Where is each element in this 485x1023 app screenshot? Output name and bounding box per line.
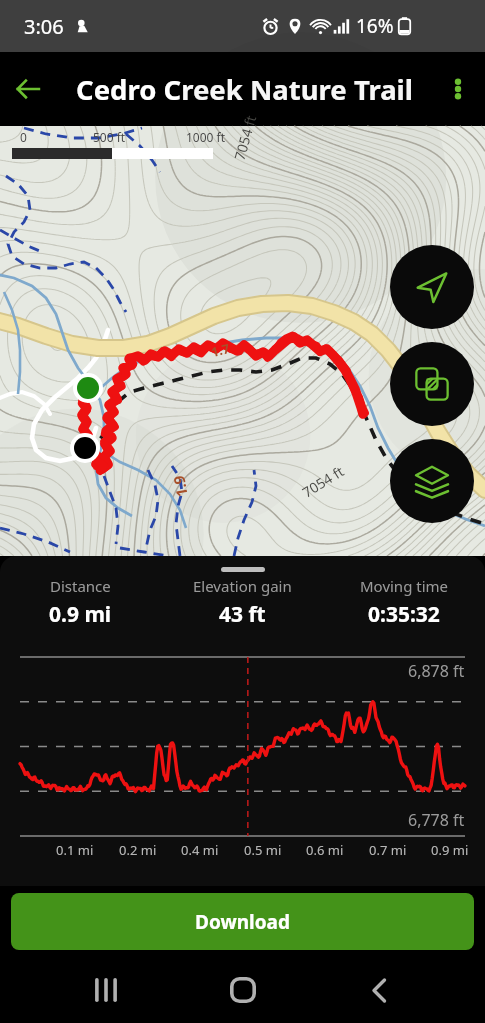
staticText: 6,778 ft — [408, 809, 465, 831]
button[interactable]: Home — [213, 960, 273, 1020]
button[interactable]: Download — [11, 893, 474, 950]
staticText: Moving time — [360, 576, 449, 596]
staticText: 7054 ft — [229, 113, 260, 162]
staticText: Distance — [50, 576, 111, 596]
staticText: 1.7 — [209, 339, 232, 361]
staticText: Cedro Creek Nature Trail — [76, 71, 414, 108]
staticText: 0.6 mi — [306, 841, 344, 859]
staticText: 16% — [356, 13, 394, 39]
button[interactable]: More options — [431, 62, 485, 116]
staticText: 6,878 ft — [408, 660, 465, 682]
staticText: 43 ft — [219, 600, 266, 629]
staticText: Download — [195, 909, 290, 935]
staticText: 0.2 mi — [119, 841, 157, 859]
button[interactable]: Back — [0, 61, 56, 117]
button[interactable]: Back — [349, 960, 409, 1020]
staticText: 0.5 mi — [244, 841, 282, 859]
staticText: 0.1 mi — [56, 841, 94, 859]
staticText: 3:06 — [24, 13, 64, 40]
staticText: 500 ft — [93, 129, 126, 145]
staticText: 0.9 mi — [49, 600, 112, 629]
button[interactable]: Map layers — [390, 439, 474, 523]
staticText: 0.4 mi — [181, 841, 219, 859]
button[interactable]: Locate — [390, 245, 474, 329]
staticText: 0:35:32 — [368, 600, 440, 629]
button[interactable]: Compare layers — [390, 342, 474, 426]
button[interactable]: Recent apps — [76, 960, 136, 1020]
staticText: 7054 ft — [298, 461, 348, 502]
staticText: 0 — [20, 129, 27, 145]
staticText: 1000 ft — [186, 129, 226, 145]
staticText: 0.7 mi — [369, 841, 407, 859]
staticText: Elevation gain — [193, 576, 292, 596]
staticText: 1.9 — [168, 473, 192, 498]
staticText: 0.9 mi — [431, 841, 469, 859]
